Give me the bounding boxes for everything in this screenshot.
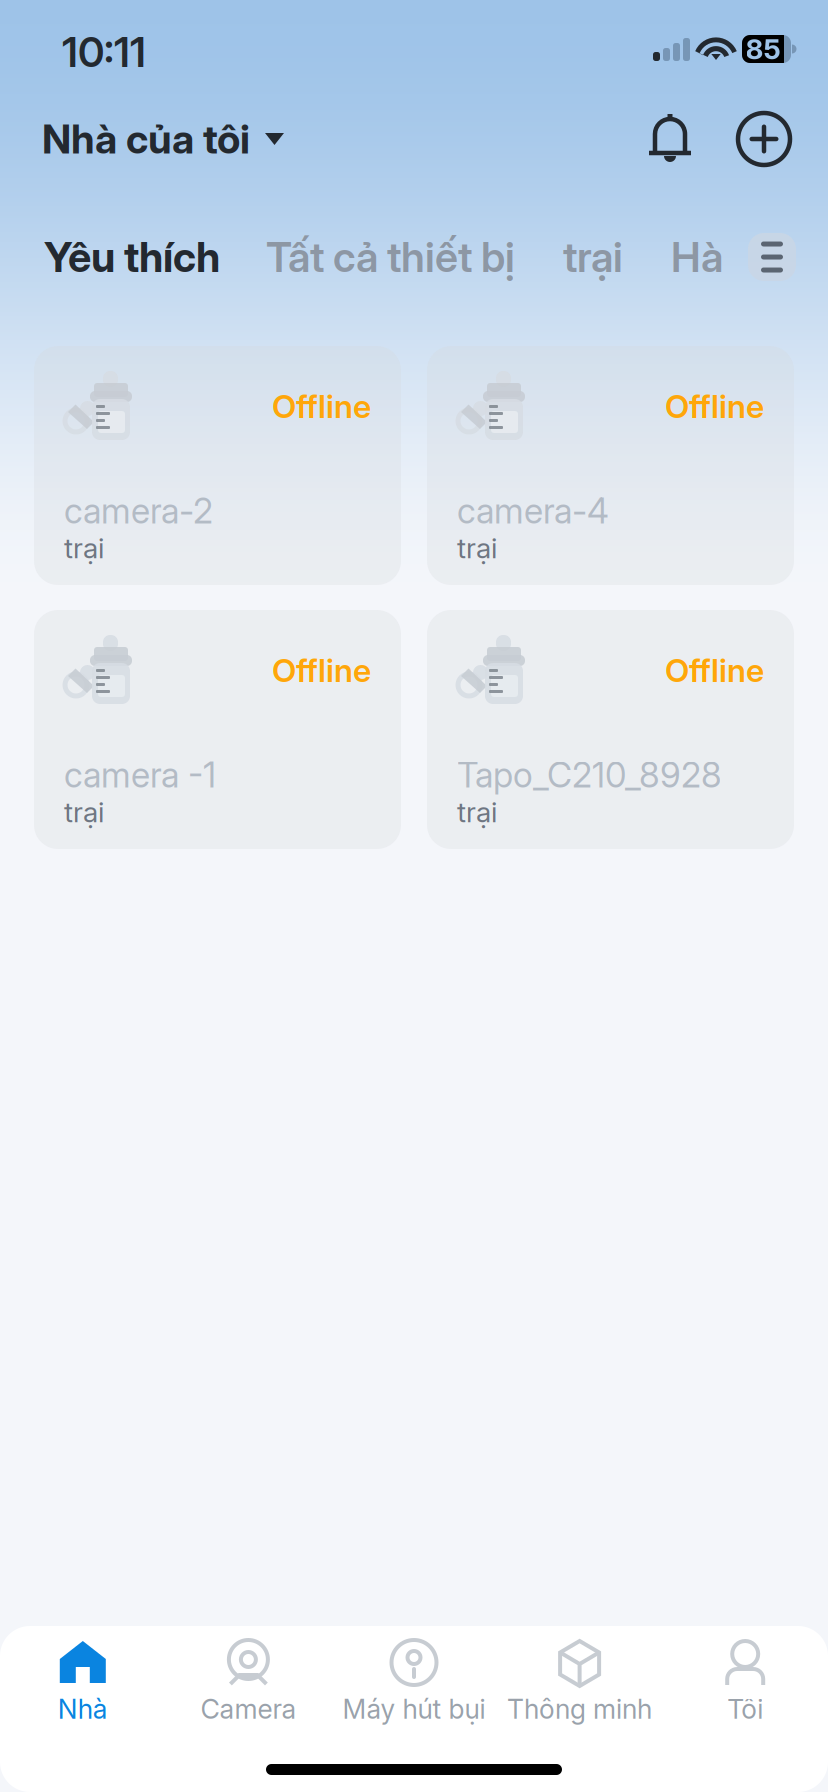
staticText: trại: [563, 232, 623, 282]
button[interactable]: Offline: [34, 610, 401, 849]
button[interactable]: Offline: [427, 346, 794, 585]
staticText: Nhà: [58, 1693, 108, 1725]
button[interactable]: Máy hút bụi: [331, 1632, 497, 1731]
staticText: camera -1: [64, 754, 216, 796]
staticText: trại: [457, 795, 497, 829]
staticText: Máy hút bụi: [342, 1693, 485, 1725]
button[interactable]: Yêu thích: [44, 218, 220, 296]
button[interactable]: Add device: [736, 111, 792, 167]
button[interactable]: Notifications: [648, 111, 700, 167]
button[interactable]: List options: [748, 233, 796, 281]
staticText: trại: [64, 795, 104, 829]
staticText: Tapo_C210_8928: [457, 754, 722, 796]
staticText: Camera: [200, 1693, 296, 1725]
button[interactable]: trại: [563, 218, 623, 296]
button[interactable]: Offline: [34, 346, 401, 585]
staticText: camera-2: [64, 490, 213, 532]
staticText: 10:11: [62, 27, 146, 77]
staticText: Offline: [272, 387, 371, 426]
button[interactable]: Tất cả thiết bị: [266, 218, 515, 296]
staticText: Nhà của tôi: [42, 115, 250, 163]
staticText: trại: [457, 531, 497, 565]
button[interactable]: Nhà: [0, 1632, 166, 1731]
staticText: 85: [745, 32, 780, 66]
button[interactable]: Nhà của tôi: [42, 101, 292, 177]
staticText: Yêu thích: [44, 232, 220, 282]
staticText: Offline: [272, 651, 371, 690]
staticText: Offline: [665, 651, 764, 690]
staticText: Offline: [665, 387, 764, 426]
staticText: Thông minh: [507, 1693, 652, 1725]
button[interactable]: Tôi: [662, 1632, 828, 1731]
button[interactable]: Offline: [427, 610, 794, 849]
staticText: Tất cả thiết bị: [266, 232, 515, 282]
button[interactable]: Thông minh: [497, 1632, 662, 1731]
button[interactable]: Camera: [166, 1632, 331, 1731]
staticText: camera-4: [457, 490, 609, 532]
button[interactable]: Hà: [671, 218, 723, 296]
staticText: trại: [64, 531, 104, 565]
staticText: Hà: [671, 232, 723, 282]
staticText: Tôi: [727, 1693, 763, 1725]
